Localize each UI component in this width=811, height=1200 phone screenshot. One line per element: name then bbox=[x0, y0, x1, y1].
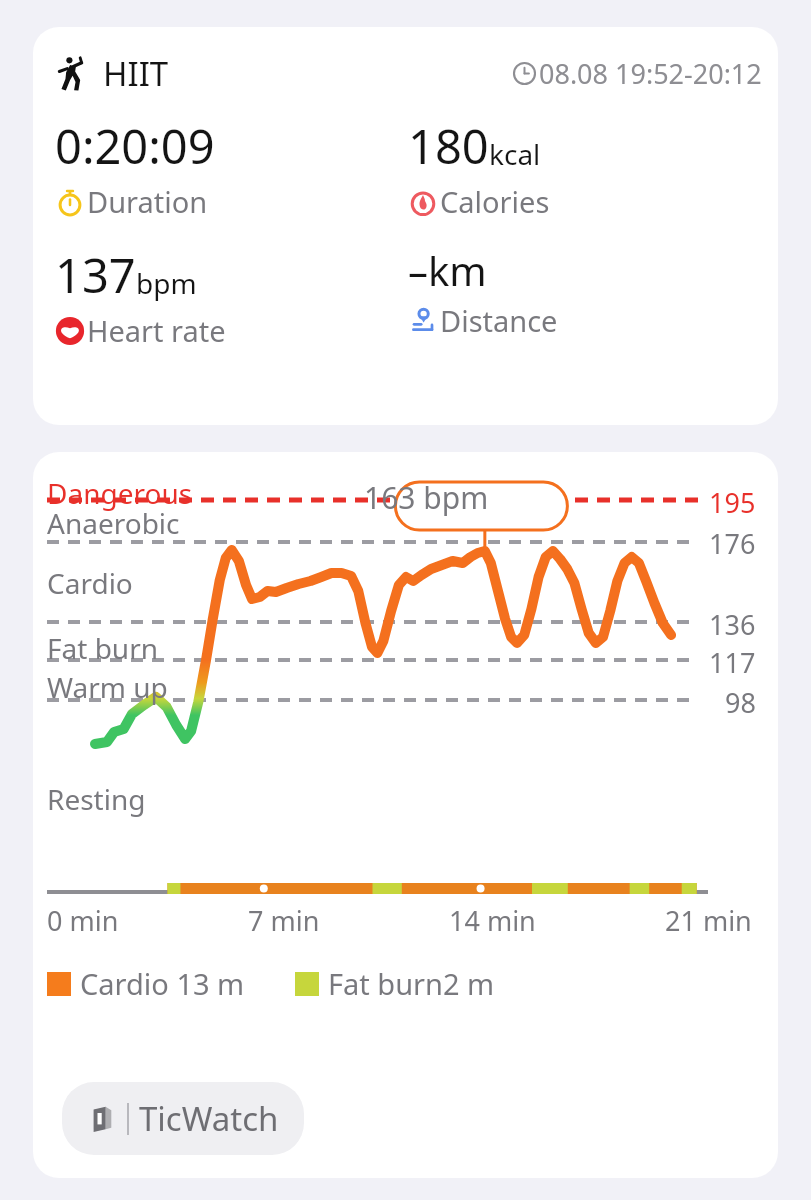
staticText: Cardio bbox=[47, 564, 133, 602]
other: Time bbox=[512, 61, 537, 86]
staticText: kcal bbox=[489, 135, 541, 173]
staticText: Warm up bbox=[47, 668, 168, 706]
other: Workout bbox=[55, 56, 91, 92]
button[interactable]: 0:20:09 bbox=[55, 114, 408, 221]
staticText: 195 bbox=[709, 484, 756, 521]
staticText: 137 bbox=[55, 243, 136, 307]
staticText: Cardio 13 m bbox=[80, 964, 245, 1003]
other: TicWatch device bbox=[87, 1104, 117, 1134]
button[interactable]: 180 bbox=[408, 114, 762, 221]
staticText: 21 min bbox=[665, 902, 752, 939]
staticText: Distance bbox=[440, 301, 558, 340]
staticText: Calories bbox=[440, 182, 550, 221]
staticText: 0 min bbox=[47, 902, 119, 939]
staticText: 180 bbox=[408, 114, 489, 178]
staticText: HIIT bbox=[103, 51, 169, 96]
staticText: 0:20:09 bbox=[55, 114, 215, 178]
staticText: Duration bbox=[87, 182, 208, 221]
staticText: 163 bpm bbox=[364, 477, 489, 518]
staticText: Heart rate bbox=[87, 311, 226, 350]
staticText: –km bbox=[408, 243, 487, 297]
staticText: 14 min bbox=[449, 902, 536, 939]
staticText: 136 bbox=[709, 606, 756, 643]
button[interactable]: TicWatch device bbox=[62, 1082, 304, 1155]
staticText: Anaerobic bbox=[47, 504, 180, 542]
staticText: 08.08 19:52-20:12 bbox=[539, 55, 762, 92]
button[interactable]: 137 bbox=[55, 243, 408, 350]
staticText: Dangerous bbox=[47, 474, 193, 512]
staticText: Resting bbox=[47, 780, 146, 818]
staticText: Fat burn bbox=[47, 629, 159, 667]
staticText: bpm bbox=[136, 264, 197, 302]
staticText: 7 min bbox=[248, 902, 320, 939]
staticText: Fat burn2 m bbox=[328, 964, 495, 1003]
button[interactable]: –km bbox=[408, 243, 762, 340]
staticText: 117 bbox=[709, 644, 756, 681]
staticText: 98 bbox=[725, 684, 756, 721]
staticText: 176 bbox=[709, 525, 756, 562]
staticText: TicWatch bbox=[139, 1096, 279, 1141]
